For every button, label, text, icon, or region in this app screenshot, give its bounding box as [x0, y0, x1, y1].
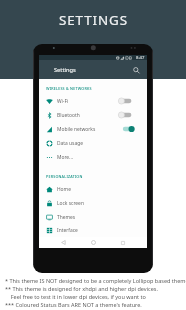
button[interactable]: Bluetooth	[39, 108, 147, 122]
button[interactable]: Themes	[39, 210, 147, 224]
staticText: Bluetooth	[57, 112, 80, 119]
button[interactable]: More...	[39, 150, 147, 164]
staticText: Themes	[57, 214, 76, 221]
staticText: WIRELESS & NETWORKS	[46, 86, 92, 91]
staticText: Interface	[57, 227, 78, 234]
button[interactable]: Mobile networks	[39, 122, 147, 136]
staticText: Settings	[54, 66, 76, 74]
button[interactable]: Interface	[39, 224, 147, 237]
staticText: Mobile networks	[57, 126, 96, 133]
button[interactable]: Lock screen	[39, 196, 147, 210]
staticText: ** This theme is designed for xhdpi and …	[5, 285, 158, 292]
staticText: Data usage	[57, 140, 83, 147]
staticText: Feel free to test it in lower dpi device…	[5, 293, 146, 300]
staticText: PERSONALIZATION	[46, 174, 83, 179]
button[interactable]: Back	[58, 237, 69, 248]
staticText: 8:47	[136, 55, 145, 60]
button[interactable]: Search	[128, 62, 144, 78]
staticText: More...	[57, 154, 74, 161]
staticText: * This theme IS NOT designed to be a com…	[5, 277, 186, 284]
button[interactable]: Wi-Fi	[39, 94, 147, 108]
button[interactable]: Home	[39, 182, 147, 196]
staticText: Home	[57, 186, 71, 193]
staticText: *** Coloured Status Bars ARE NOT a theme…	[5, 301, 142, 308]
button[interactable]: Home	[88, 237, 99, 248]
button[interactable]: Data usage	[39, 136, 147, 150]
staticText: Lock screen	[57, 200, 84, 207]
staticText: Wi-Fi	[57, 98, 69, 105]
staticText: SETTINGS	[59, 11, 128, 29]
button[interactable]: Recent apps	[117, 237, 128, 248]
